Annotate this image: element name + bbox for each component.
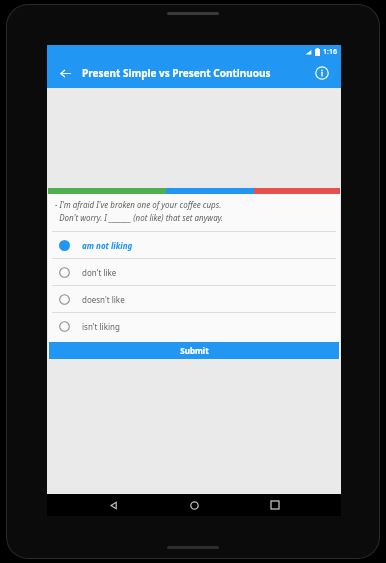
button[interactable]: doesn't like bbox=[48, 286, 340, 312]
staticText: don't like bbox=[82, 267, 117, 278]
staticText: 1:16 bbox=[323, 47, 337, 57]
staticText: Present Simple vs Present Continuous bbox=[82, 66, 311, 80]
button[interactable]: Back bbox=[55, 63, 75, 83]
button[interactable]: Home bbox=[179, 494, 209, 516]
staticText: doesn't like bbox=[82, 294, 125, 305]
button[interactable]: don't like bbox=[48, 259, 340, 285]
button[interactable]: am not liking bbox=[48, 232, 340, 258]
staticText: Submit bbox=[180, 345, 209, 356]
button[interactable]: Submit bbox=[49, 342, 339, 359]
button[interactable]: Recent apps bbox=[260, 494, 290, 516]
button[interactable]: Back bbox=[98, 494, 128, 516]
button[interactable]: isn't liking bbox=[48, 313, 340, 339]
staticText: isn't liking bbox=[82, 321, 120, 332]
staticText: - I'm afraid I've broken one of your cof… bbox=[55, 199, 222, 210]
staticText: am not liking bbox=[82, 240, 133, 251]
button[interactable]: Info bbox=[311, 62, 333, 84]
staticText: Don't worry. I _______ (not like) that s… bbox=[55, 212, 224, 223]
